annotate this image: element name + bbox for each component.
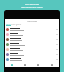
button[interactable] xyxy=(5,47,59,52)
staticText: CHATS xyxy=(6,23,11,25)
button[interactable] xyxy=(5,42,59,47)
button[interactable]: Chats xyxy=(5,62,18,67)
staticText: Stay connected xyxy=(25,3,39,6)
staticText: CALLS xyxy=(11,23,16,25)
button[interactable]: Contacts xyxy=(31,62,45,67)
button[interactable] xyxy=(5,37,59,42)
button[interactable] xyxy=(5,27,59,32)
button[interactable]: Settings xyxy=(45,62,59,67)
button[interactable]: Calls xyxy=(18,62,31,67)
button[interactable] xyxy=(5,57,59,62)
staticText: with people who matter xyxy=(21,6,43,9)
button[interactable] xyxy=(5,52,59,57)
button[interactable]: CHATS xyxy=(6,23,11,27)
button[interactable] xyxy=(5,32,59,37)
staticText: GROUPS xyxy=(16,23,22,27)
button[interactable]: GROUPS xyxy=(16,23,22,27)
staticText: Messages xyxy=(27,20,38,23)
button[interactable]: CALLS xyxy=(11,23,16,27)
